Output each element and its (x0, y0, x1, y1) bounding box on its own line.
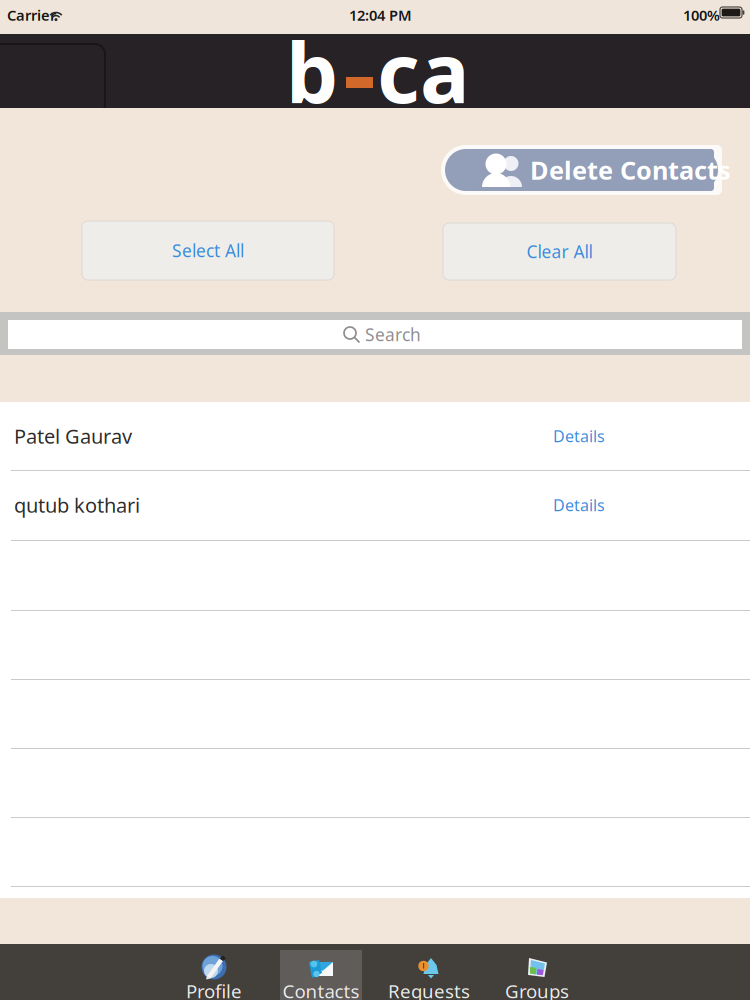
staticText: Profile (186, 979, 242, 1000)
button[interactable]: qutub kothari (0, 471, 750, 539)
staticText: ca (377, 16, 470, 126)
button[interactable]: Search (8, 320, 742, 349)
staticText: qutub kothari (14, 492, 140, 518)
staticText: Requests (388, 979, 470, 1000)
staticText: Details (553, 494, 605, 516)
staticText: Contacts (282, 979, 359, 1000)
button[interactable]: Clear All (443, 223, 676, 280)
button[interactable]: Back (0, 44, 105, 114)
staticText: 12:04 PM (349, 5, 412, 25)
staticText: Clear All (526, 240, 592, 263)
staticText: Patel Gaurav (14, 423, 132, 449)
staticText: Groups (505, 979, 569, 1000)
staticText: Search (365, 323, 421, 346)
staticText: 100% (683, 5, 720, 25)
staticText: b (286, 16, 338, 126)
staticText: Details (553, 425, 605, 447)
button[interactable]: Profile (173, 950, 255, 1000)
staticText: Carrier (7, 5, 56, 25)
button[interactable]: Contacts (280, 950, 362, 1000)
staticText: Select All (172, 239, 244, 262)
button[interactable]: Groups (496, 950, 578, 1000)
staticText: Delete Contacts (530, 153, 731, 187)
button[interactable]: Patel Gaurav (0, 402, 750, 470)
button[interactable]: Select All (82, 221, 334, 280)
button[interactable]: Requests (388, 950, 470, 1000)
button[interactable]: Delete Contacts (441, 145, 722, 195)
